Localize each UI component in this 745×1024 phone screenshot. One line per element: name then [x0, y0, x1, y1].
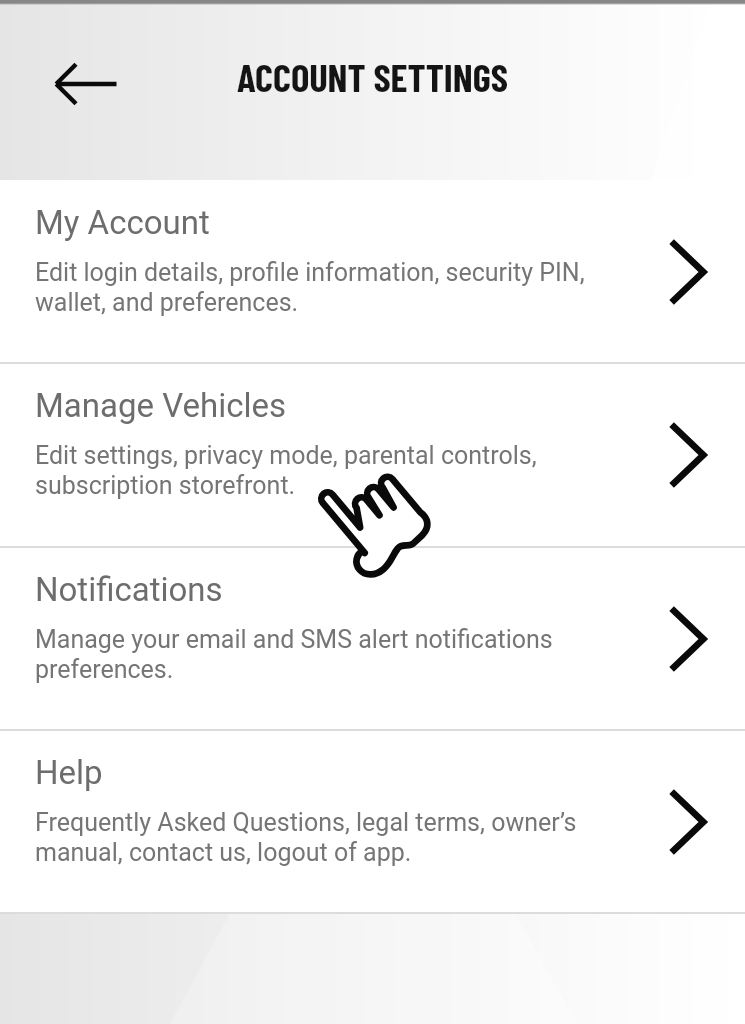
button[interactable]: Notifications — [0, 547, 745, 730]
staticText: Help — [35, 753, 103, 792]
button[interactable]: Open My Account — [635, 180, 745, 363]
staticText: Notifications — [35, 570, 223, 609]
button[interactable]: My Account — [0, 180, 745, 363]
button[interactable]: Open Notifications — [635, 547, 745, 730]
staticText: Frequently Asked Questions, legal terms,… — [35, 808, 577, 867]
staticText: Edit login details, profile information,… — [35, 258, 585, 317]
button[interactable]: Open Help — [635, 730, 745, 913]
staticText: Edit settings, privacy mode, parental co… — [35, 441, 537, 500]
button[interactable]: Help — [0, 730, 745, 913]
staticText: Manage Vehicles — [35, 386, 286, 425]
staticText: ACCOUNT SETTINGS — [0, 53, 745, 100]
staticText: My Account — [35, 203, 210, 242]
staticText: Manage your email and SMS alert notifica… — [35, 625, 553, 684]
button[interactable]: Back — [54, 61, 119, 107]
button[interactable]: Open Manage Vehicles — [635, 363, 745, 546]
button[interactable]: Manage Vehicles — [0, 363, 745, 546]
